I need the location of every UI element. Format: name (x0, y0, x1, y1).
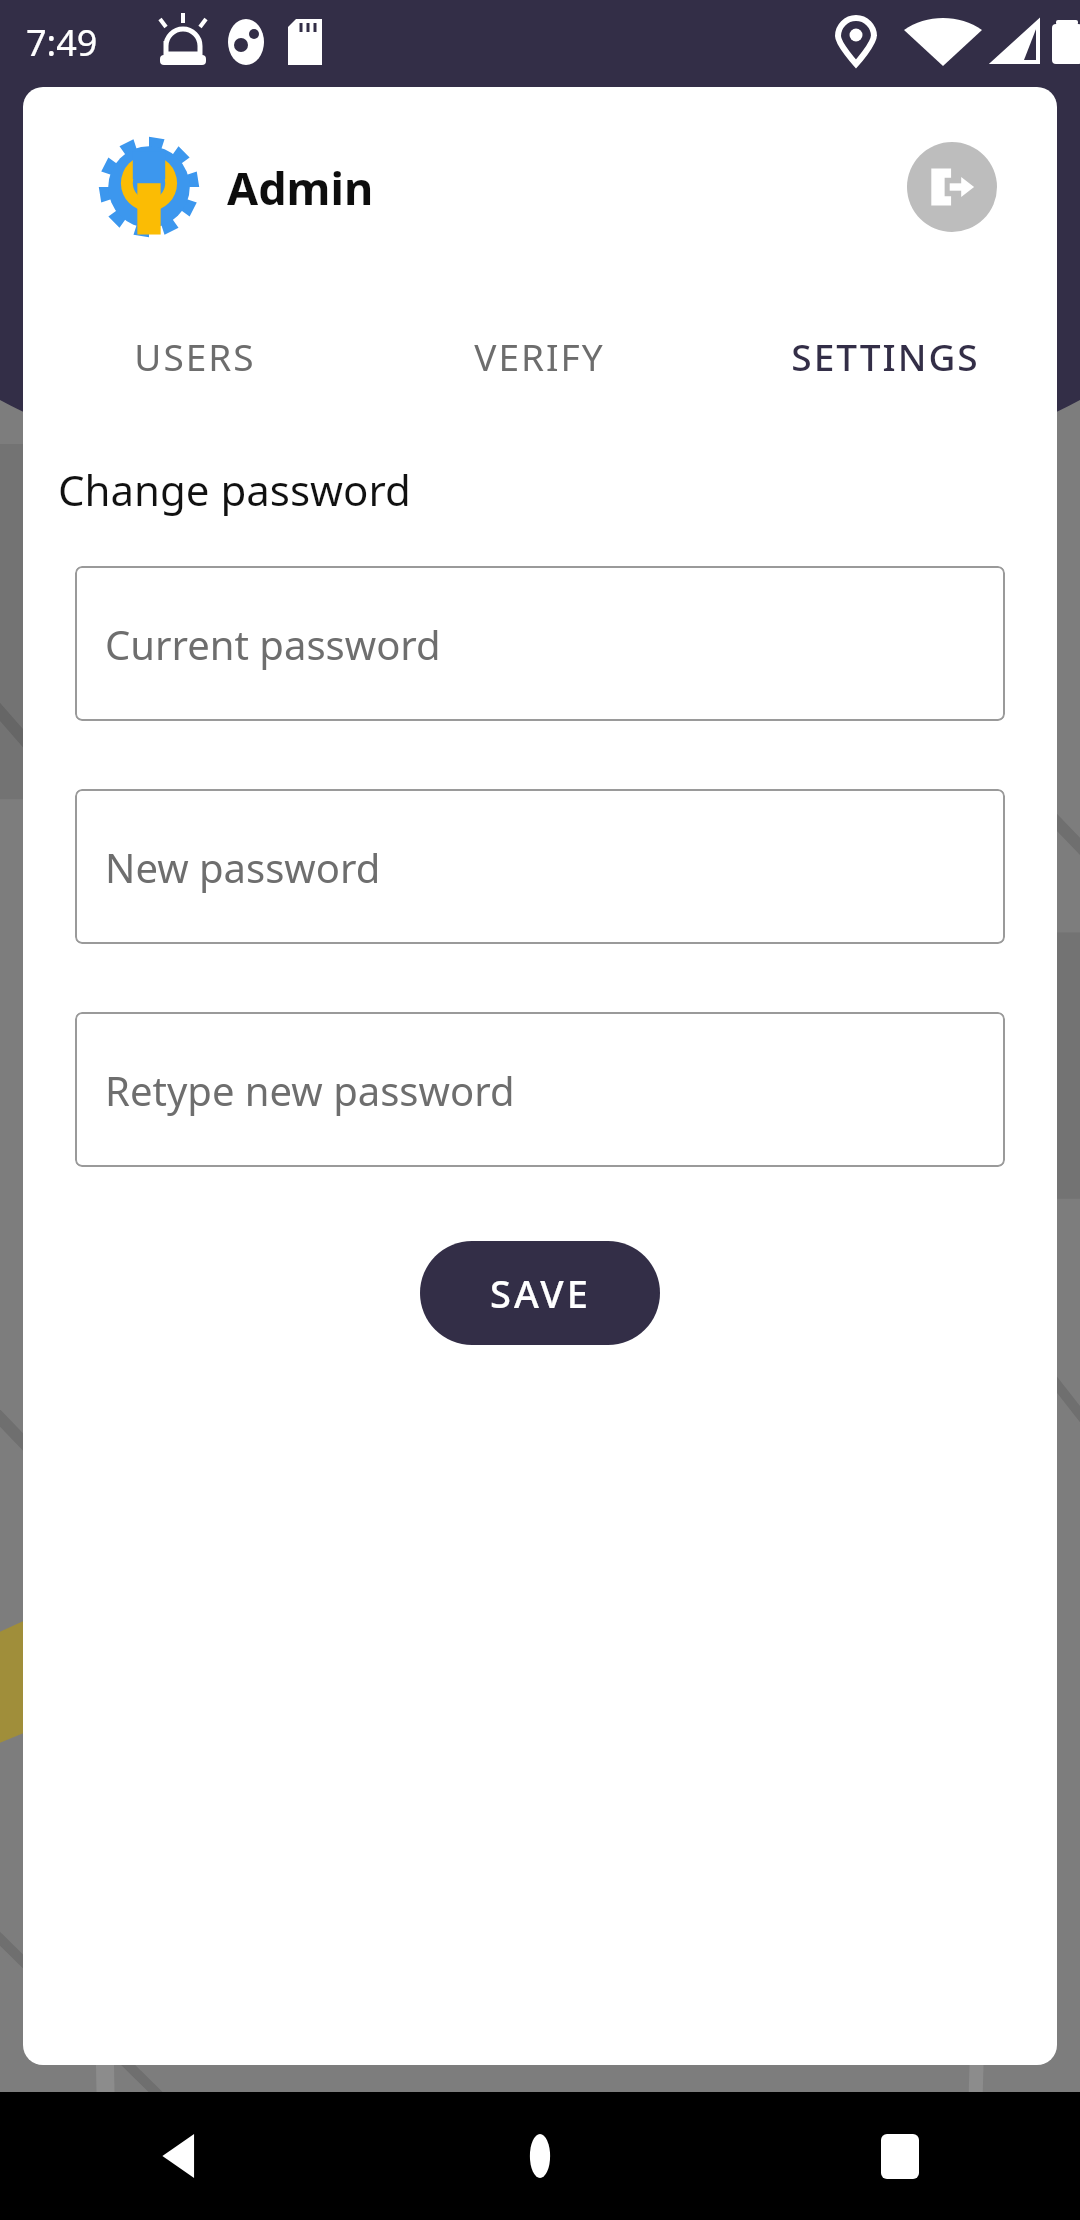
button[interactable]: Retype new password (75, 1012, 1005, 1167)
staticText: Change password (58, 461, 411, 518)
button[interactable]: Recent apps (852, 2108, 948, 2204)
staticText: Retype new password (105, 1063, 515, 1117)
button[interactable]: Back (132, 2108, 228, 2204)
button[interactable]: New password (75, 789, 1005, 944)
staticText: SETTINGS (791, 331, 980, 381)
button[interactable]: USERS (23, 287, 367, 417)
button[interactable]: SETTINGS (712, 287, 1057, 417)
staticText: New password (105, 840, 381, 894)
staticText: VERIFY (474, 331, 605, 381)
button[interactable]: Log out (907, 142, 997, 232)
button[interactable]: SAVE (420, 1241, 660, 1345)
staticText: Admin (227, 157, 374, 218)
staticText: Current password (105, 617, 441, 671)
button[interactable]: Home (492, 2108, 588, 2204)
button[interactable]: Current password (75, 566, 1005, 721)
staticText: 7:49 (26, 18, 98, 67)
staticText: USERS (134, 331, 256, 381)
staticText: SAVE (490, 1267, 591, 1319)
button[interactable]: VERIFY (367, 287, 712, 417)
